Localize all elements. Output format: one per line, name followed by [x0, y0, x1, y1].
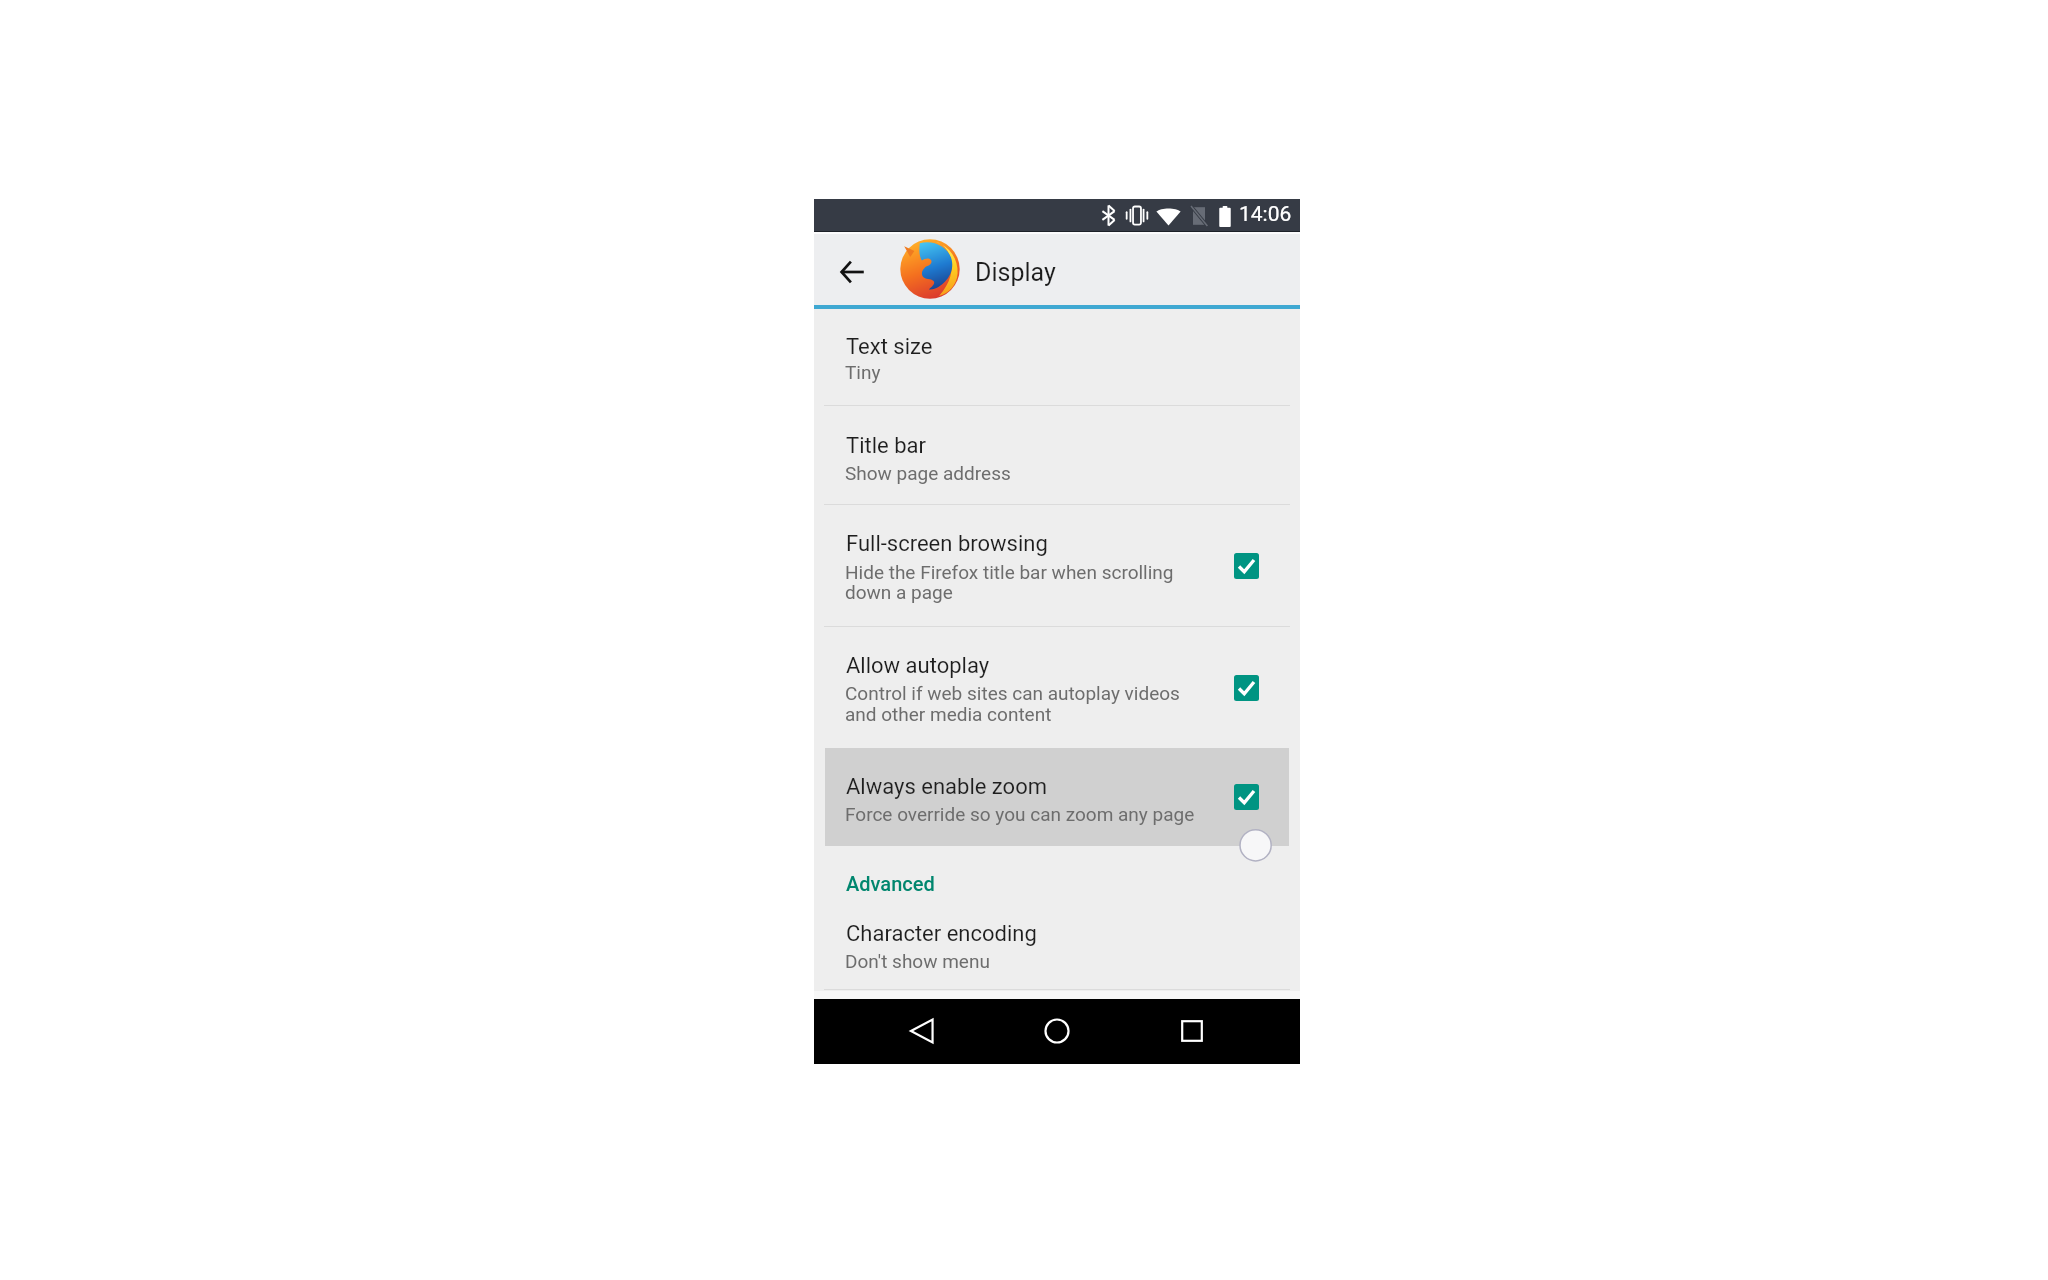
button[interactable]: Allow autoplay — [814, 627, 1300, 748]
staticText: Don't show menu — [845, 950, 990, 972]
staticText: and other media content — [845, 703, 1052, 725]
staticText: Advanced — [846, 872, 935, 895]
staticText: Allow autoplay — [846, 653, 990, 679]
button[interactable]: Character encoding — [814, 896, 1300, 990]
staticText: Text size — [846, 334, 933, 360]
button[interactable]: Toggle Allow autoplay — [1221, 663, 1271, 713]
button[interactable]: Home — [1029, 1003, 1085, 1059]
button[interactable]: Back — [894, 1003, 950, 1059]
staticText: Hide the Firefox title bar when scrollin… — [845, 561, 1174, 583]
staticText: down a page — [845, 581, 953, 603]
staticText: Force override so you can zoom any page — [845, 803, 1195, 825]
button[interactable]: Full-screen browsing — [814, 505, 1300, 627]
button[interactable]: Title bar — [814, 406, 1300, 505]
staticText: 14:06 — [1239, 202, 1292, 227]
button[interactable]: Toggle Always enable zoom — [1221, 772, 1271, 822]
button[interactable]: Recent apps — [1164, 1003, 1220, 1059]
staticText: Full-screen browsing — [846, 531, 1048, 557]
button[interactable]: Text size — [814, 309, 1300, 406]
staticText: Control if web sites can autoplay videos — [845, 682, 1180, 704]
staticText: Tiny — [845, 361, 881, 383]
staticText: Character encoding — [846, 921, 1037, 947]
staticText: Show page address — [845, 462, 1011, 484]
staticText: Display — [975, 258, 1056, 287]
staticText: Title bar — [846, 433, 926, 459]
button[interactable]: Navigate up — [827, 247, 877, 297]
button[interactable]: Always enable zoom — [814, 748, 1300, 846]
staticText: Always enable zoom — [846, 774, 1047, 800]
button[interactable]: Toggle Full-screen browsing — [1221, 541, 1271, 591]
